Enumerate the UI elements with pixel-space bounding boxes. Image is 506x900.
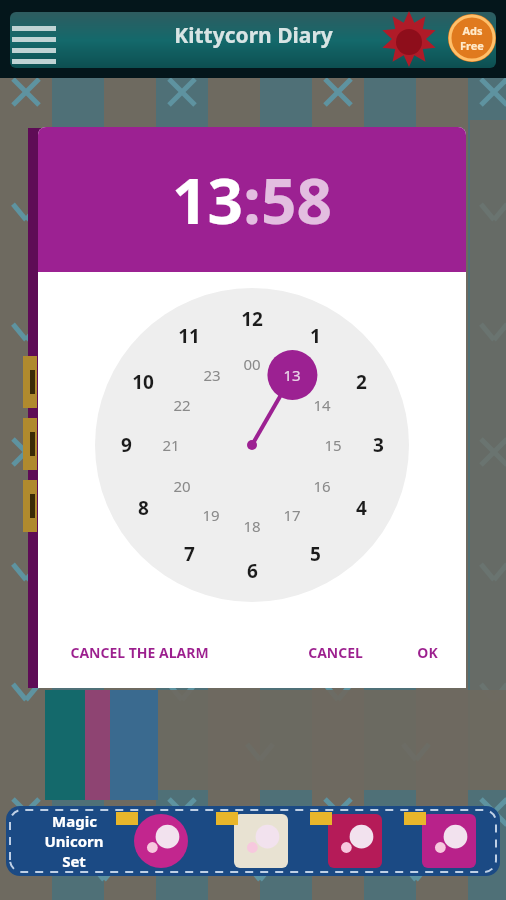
button[interactable]: 16 (313, 476, 331, 496)
button[interactable]: 13 (283, 365, 301, 385)
button[interactable]: 6 (247, 558, 258, 584)
button[interactable]: Promo app (234, 814, 288, 868)
button[interactable]: 21 (162, 435, 180, 455)
button[interactable]: 7 (184, 541, 195, 567)
button[interactable]: OK (403, 635, 452, 670)
button[interactable]: Menu (4, 16, 52, 64)
button[interactable]: 2 (356, 369, 367, 395)
button[interactable]: Promo app (422, 814, 476, 868)
button[interactable]: 13 (172, 158, 243, 242)
staticText: Kittycorn Diary (174, 21, 333, 50)
button[interactable]: 19 (202, 505, 220, 525)
button[interactable]: 12 (241, 306, 263, 332)
staticText: : (243, 158, 261, 242)
button[interactable]: 00 (243, 354, 261, 374)
button[interactable]: 20 (173, 476, 191, 496)
button[interactable]: 14 (313, 395, 331, 415)
button[interactable]: 17 (283, 505, 301, 525)
staticText: OK (417, 643, 438, 662)
button[interactable]: 22 (173, 395, 191, 415)
button[interactable]: 1 (310, 323, 321, 349)
staticText: Free (460, 38, 484, 53)
staticText: Set (62, 851, 86, 871)
staticText: Magic (52, 811, 97, 831)
staticText: Unicorn (44, 831, 104, 851)
button[interactable]: 23 (203, 365, 221, 385)
button[interactable]: 18 (243, 516, 261, 536)
button[interactable]: Promo app (134, 814, 188, 868)
button[interactable]: Magic Unicorn Set promo (6, 806, 500, 876)
button[interactable]: 11 (178, 323, 200, 349)
button[interactable]: 15 (324, 435, 342, 455)
button[interactable]: Promo app (328, 814, 382, 868)
button[interactable]: 58 (261, 158, 332, 242)
staticText: Ads (462, 23, 483, 38)
button[interactable]: 9 (121, 432, 132, 458)
button[interactable]: 4 (356, 495, 367, 521)
button[interactable]: Free prize (382, 12, 436, 66)
button[interactable]: Ads free (448, 14, 496, 62)
button[interactable]: 8 (138, 495, 149, 521)
button[interactable]: CANCEL THE ALARM (58, 635, 221, 670)
button[interactable]: 10 (132, 369, 154, 395)
button[interactable]: 5 (310, 541, 321, 567)
staticText: CANCEL THE ALARM (70, 643, 209, 662)
staticText: CANCEL (308, 643, 363, 662)
button[interactable]: CANCEL (294, 635, 377, 670)
button[interactable]: 3 (373, 432, 384, 458)
